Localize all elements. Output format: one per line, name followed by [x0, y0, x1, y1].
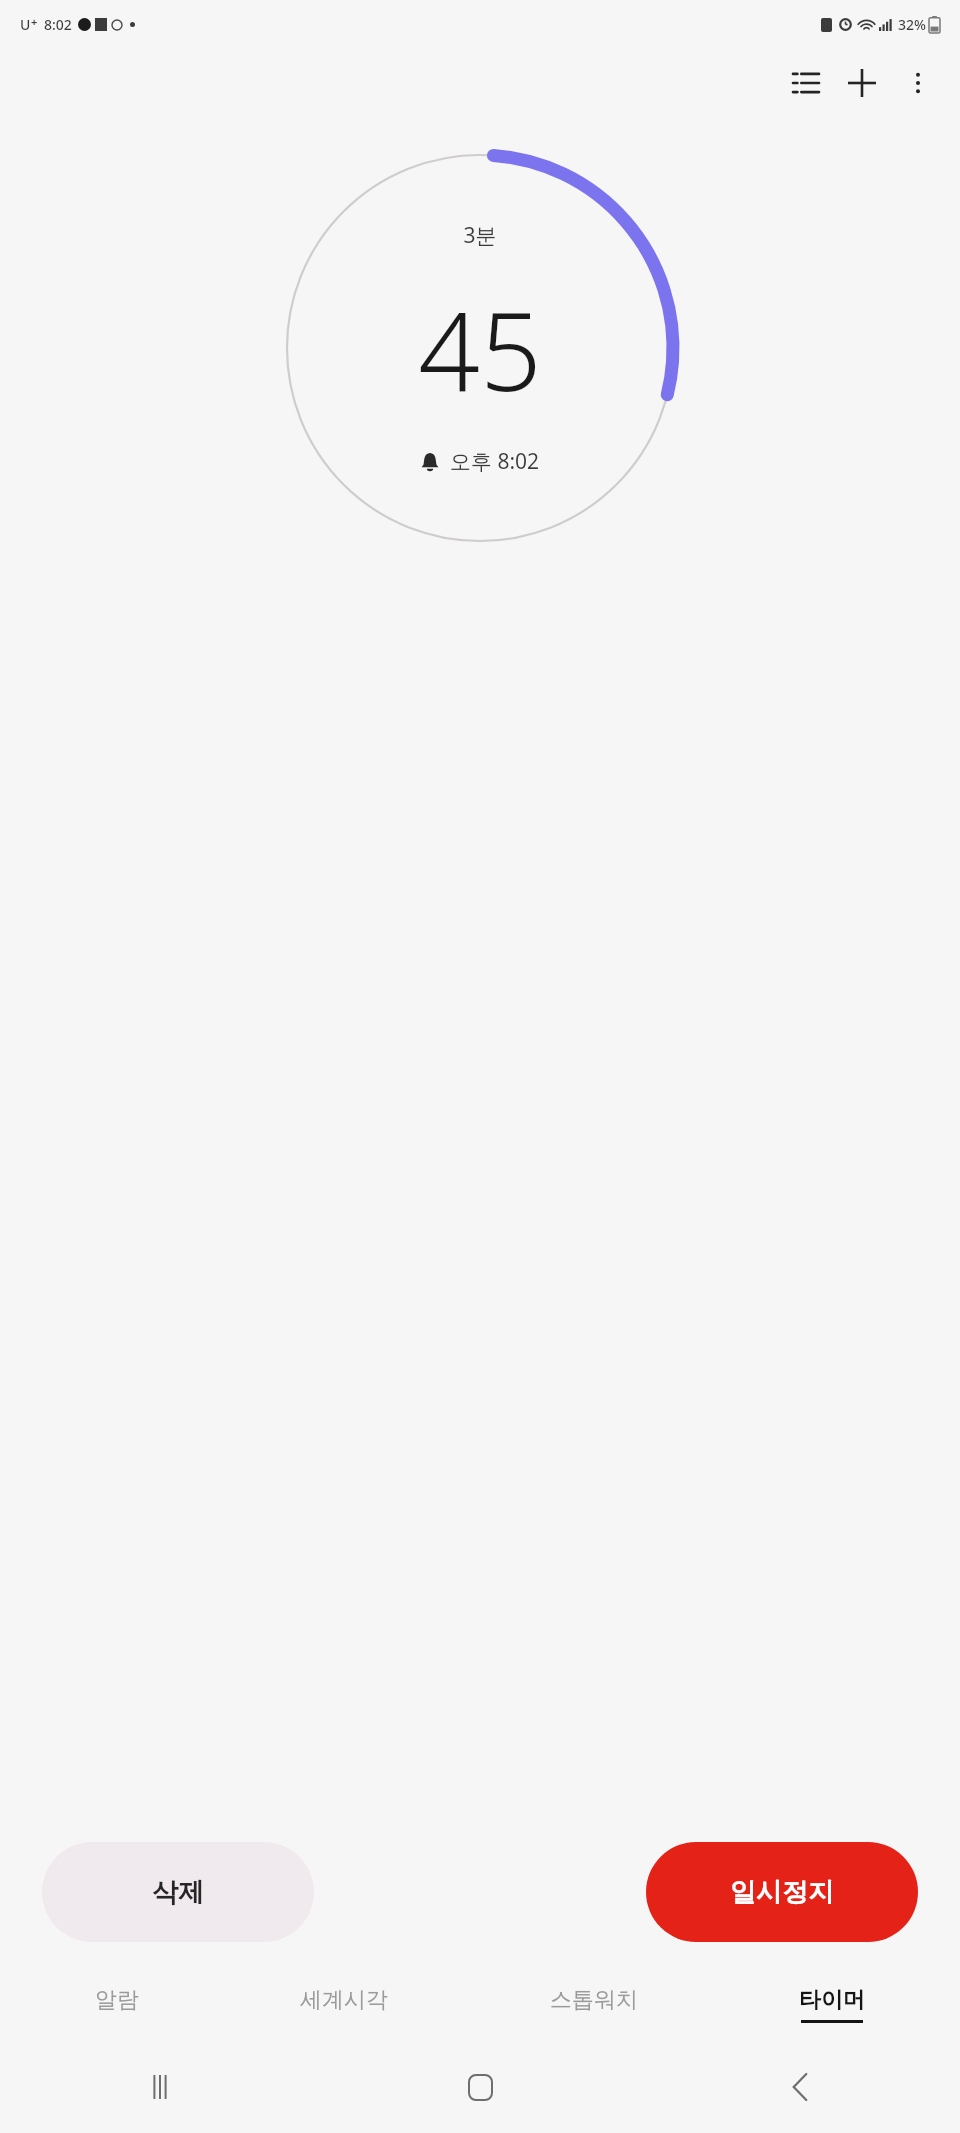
button[interactable]: Recents	[125, 2055, 195, 2119]
staticText: 3분	[463, 221, 497, 250]
button[interactable]: 알람	[79, 1978, 155, 2031]
staticText: 8:02	[44, 15, 72, 34]
staticText: +	[31, 14, 38, 29]
button[interactable]: 스톱워치	[534, 1978, 654, 2031]
staticText: 알람	[95, 1986, 139, 2014]
button[interactable]: 삭제	[42, 1842, 314, 1942]
button[interactable]: 타이머	[783, 1978, 881, 2031]
staticText: U	[20, 15, 31, 34]
staticText: 오후 8:02	[450, 447, 540, 476]
staticText: 스톱워치	[550, 1986, 638, 2014]
staticText: 삭제	[152, 1876, 204, 1909]
button[interactable]: Home	[445, 2055, 515, 2119]
staticText: 타이머	[799, 1986, 865, 2014]
staticText: 세계시각	[300, 1986, 388, 2014]
button[interactable]: 세계시각	[284, 1978, 404, 2031]
staticText: 45	[418, 276, 542, 423]
button[interactable]: Add timer	[834, 55, 890, 111]
button[interactable]: 일시정지	[646, 1842, 918, 1942]
button[interactable]: Timer presets	[778, 55, 834, 111]
button[interactable]: Back	[765, 2055, 835, 2119]
button[interactable]: More options	[890, 55, 946, 111]
staticText: 일시정지	[730, 1876, 834, 1909]
staticText: 32%	[898, 15, 926, 34]
